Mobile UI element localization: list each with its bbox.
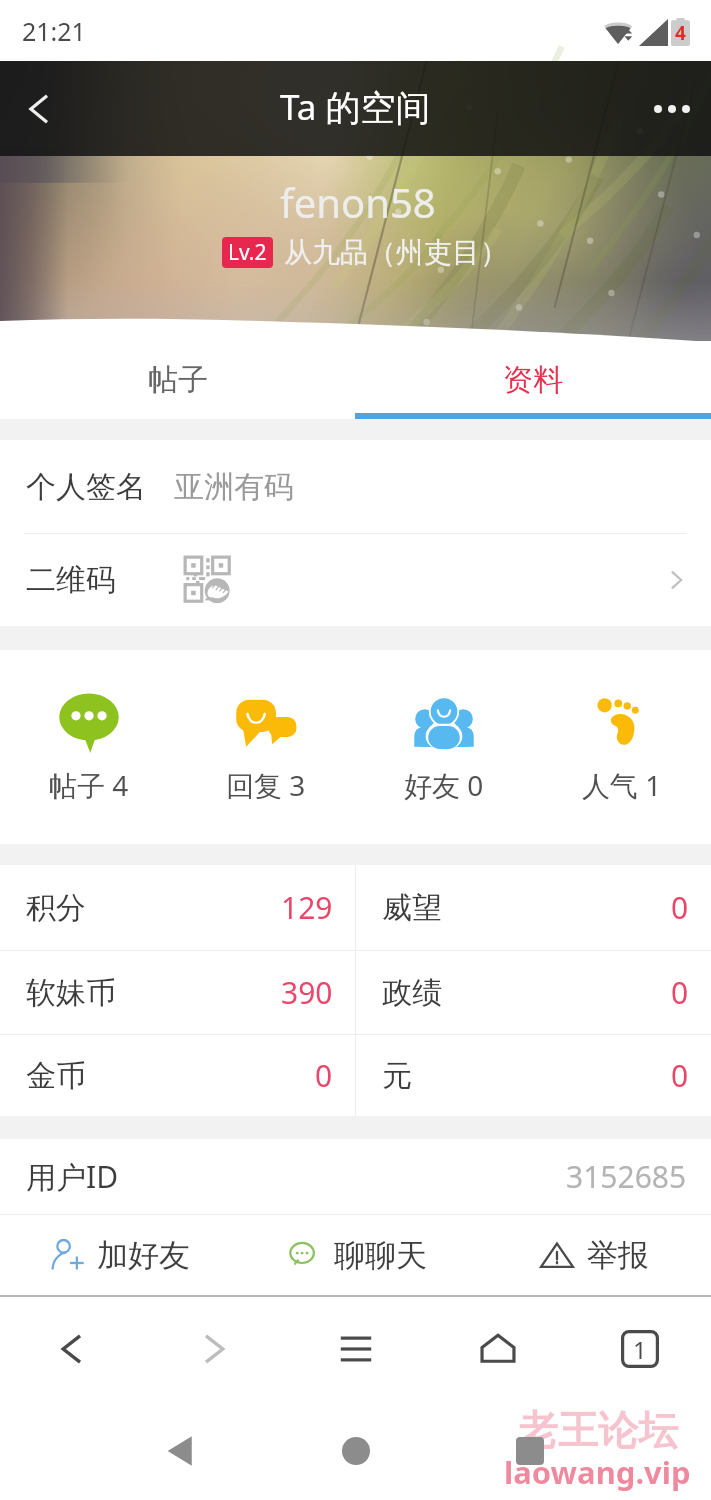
staticText: 从九品（州吏目） [284,235,508,270]
button[interactable]: 金币 [0,1035,355,1116]
staticText: 聊聊天 [334,1236,427,1275]
staticText: 0 [671,887,689,928]
staticText: Ta 的空间 [280,83,431,131]
staticText: 二维码 [26,561,116,599]
button[interactable]: 聊聊天 [237,1215,474,1295]
button[interactable]: Menu [285,1297,427,1401]
button[interactable]: Back [0,1297,143,1401]
button[interactable]: 人气 1 [533,650,711,844]
staticText: laowang.vip [504,1451,691,1493]
staticText: 1 [633,1333,647,1366]
staticText: 举报 [587,1236,649,1275]
staticText: 帖子 [148,361,208,399]
button[interactable]: 好友 0 [355,650,533,844]
button[interactable]: Back [0,61,78,156]
button[interactable]: Recents [490,1411,570,1491]
staticText: 3152685 [566,1156,687,1197]
button[interactable]: Forward [143,1297,285,1401]
button[interactable]: 用户ID [0,1139,711,1214]
staticText: 亚洲有码 [174,468,294,506]
staticText: 129 [281,887,333,928]
button[interactable]: Back [140,1411,220,1491]
button[interactable]: 帖子 [0,341,355,419]
staticText: 0 [671,1055,689,1096]
button[interactable]: Home [427,1297,569,1401]
staticText: 老王论坛 [518,1405,678,1455]
button[interactable]: More options [633,61,711,156]
button[interactable]: 举报 [474,1215,711,1295]
staticText: 政绩 [382,974,442,1012]
staticText: 威望 [382,889,442,927]
button[interactable]: 积分 [0,865,355,950]
staticText: fenon58 [280,175,436,229]
staticText: 21:21 [22,14,86,48]
staticText: 资料 [503,361,563,399]
staticText: 加好友 [97,1236,190,1275]
staticText: 4 [675,20,686,46]
button[interactable]: Home [316,1411,396,1491]
staticText: 0 [671,972,689,1013]
button[interactable]: 帖子 4 [0,650,177,844]
staticText: 金币 [26,1057,86,1095]
staticText: 元 [382,1057,412,1095]
staticText: 好友 0 [404,766,484,804]
staticText: 用户ID [26,1156,119,1197]
button[interactable]: 二维码 [0,534,711,626]
staticText: Lv.2 [228,238,267,267]
button[interactable]: 资料 [355,341,711,419]
staticText: 回复 3 [226,766,306,804]
button[interactable]: 元 [356,1035,711,1116]
button[interactable]: 政绩 [356,951,711,1034]
button[interactable]: 软妹币 [0,951,355,1034]
staticText: 帖子 4 [49,766,129,804]
staticText: 软妹币 [26,974,116,1012]
staticText: 390 [281,972,333,1013]
staticText: 0 [315,1055,333,1096]
staticText: 人气 1 [582,766,662,804]
button[interactable]: Tabs [569,1297,711,1401]
staticText: 积分 [26,889,86,927]
button[interactable]: 回复 3 [177,650,355,844]
button[interactable]: 加好友 [0,1215,237,1295]
staticText: 个人签名 [26,468,146,506]
button[interactable]: 威望 [356,865,711,950]
button[interactable]: 个人签名 [0,440,711,533]
